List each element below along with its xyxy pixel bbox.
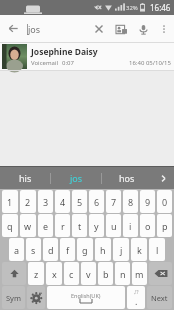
button[interactable]: 3 bbox=[38, 190, 53, 213]
staticText: 7 bbox=[111, 196, 117, 208]
button[interactable]: Backspace bbox=[149, 262, 172, 285]
button[interactable]: 1 bbox=[2, 190, 18, 213]
button[interactable]: j bbox=[113, 238, 129, 261]
staticText: 8 bbox=[128, 196, 134, 208]
button[interactable]: Sym bbox=[2, 286, 25, 309]
button[interactable]: Add contact bbox=[110, 18, 132, 40]
staticText: y bbox=[94, 220, 99, 232]
staticText: 1 bbox=[7, 196, 13, 208]
button[interactable]: n bbox=[115, 262, 130, 285]
staticText: 32% bbox=[126, 4, 138, 12]
staticText: b bbox=[103, 268, 109, 280]
staticText: l bbox=[156, 244, 159, 256]
staticText: 4 bbox=[60, 196, 66, 208]
button[interactable]: r bbox=[55, 214, 70, 237]
button[interactable]: w bbox=[20, 214, 36, 237]
button[interactable]: 9 bbox=[140, 190, 155, 213]
staticText: g bbox=[82, 244, 88, 256]
button[interactable]: b bbox=[98, 262, 113, 285]
staticText: h bbox=[100, 244, 106, 256]
button[interactable]: u bbox=[106, 214, 121, 237]
button[interactable]: 6 bbox=[89, 190, 104, 213]
staticText: w bbox=[24, 220, 32, 232]
button[interactable]: Back bbox=[0, 15, 27, 42]
button[interactable]: s bbox=[26, 238, 41, 261]
staticText: 16:46 bbox=[150, 2, 171, 13]
staticText: k bbox=[137, 244, 142, 256]
button[interactable]: Voice search bbox=[132, 18, 154, 40]
staticText: Voicemail bbox=[31, 59, 58, 67]
staticText: Josephine Daisy bbox=[31, 46, 98, 58]
button[interactable]: h bbox=[95, 238, 111, 261]
staticText: Sym bbox=[6, 293, 21, 303]
button[interactable]: m bbox=[132, 262, 147, 285]
button[interactable]: Josephine Daisy bbox=[0, 43, 174, 70]
button[interactable]: Next bbox=[147, 286, 172, 309]
button[interactable]: a bbox=[9, 238, 24, 261]
button[interactable]: 5 bbox=[72, 190, 87, 213]
button[interactable]: Period bbox=[127, 286, 145, 309]
staticText: o bbox=[145, 220, 151, 232]
staticText: z bbox=[34, 268, 39, 280]
button[interactable]: More suggestions bbox=[152, 167, 174, 189]
button[interactable]: o bbox=[140, 214, 155, 237]
button[interactable]: e bbox=[38, 214, 53, 237]
staticText: i bbox=[129, 220, 132, 232]
button[interactable]: f bbox=[60, 238, 75, 261]
button[interactable]: l bbox=[149, 238, 165, 261]
button[interactable]: x bbox=[46, 262, 62, 285]
staticText: 0:07 bbox=[62, 59, 74, 67]
button[interactable]: jos bbox=[51, 167, 101, 189]
button[interactable]: g bbox=[77, 238, 93, 261]
staticText: 0 bbox=[162, 196, 168, 208]
staticText: a bbox=[14, 244, 20, 256]
button[interactable]: jos bbox=[27, 15, 88, 42]
button[interactable]: Clear bbox=[88, 18, 110, 40]
staticText: d bbox=[48, 244, 54, 256]
button[interactable]: z bbox=[28, 262, 44, 285]
button[interactable]: y bbox=[89, 214, 104, 237]
button[interactable]: 4 bbox=[55, 190, 70, 213]
button[interactable]: d bbox=[43, 238, 58, 261]
button[interactable]: c bbox=[64, 262, 79, 285]
staticText: Next bbox=[151, 293, 168, 303]
staticText: s bbox=[31, 244, 36, 256]
staticText: his bbox=[19, 172, 32, 184]
staticText: p bbox=[162, 220, 168, 232]
staticText: u bbox=[111, 220, 117, 232]
staticText: m bbox=[135, 268, 144, 280]
button[interactable]: t bbox=[72, 214, 87, 237]
staticText: v bbox=[86, 268, 91, 280]
staticText: ,!? bbox=[134, 289, 139, 295]
button[interactable]: Shift bbox=[2, 262, 26, 285]
staticText: jos bbox=[28, 23, 41, 35]
staticText: x bbox=[52, 268, 57, 280]
staticText: q bbox=[7, 220, 13, 232]
staticText: c bbox=[69, 268, 74, 280]
button[interactable]: 2 bbox=[20, 190, 36, 213]
staticText: 3 bbox=[43, 196, 49, 208]
staticText: 9 bbox=[145, 196, 151, 208]
staticText: t bbox=[78, 220, 82, 232]
button[interactable]: k bbox=[131, 238, 147, 261]
button[interactable]: 0 bbox=[157, 190, 172, 213]
staticText: English(UK) bbox=[71, 292, 101, 299]
button[interactable]: hos bbox=[102, 167, 152, 189]
button[interactable]: Space bbox=[47, 286, 125, 309]
button[interactable]: 8 bbox=[123, 190, 138, 213]
staticText: 16:40 05/10/15 bbox=[129, 59, 171, 67]
button[interactable]: q bbox=[2, 214, 18, 237]
button[interactable]: More options bbox=[154, 19, 174, 39]
staticText: n bbox=[120, 268, 126, 280]
button[interactable]: his bbox=[0, 167, 50, 189]
staticText: e bbox=[43, 220, 49, 232]
staticText: 2 bbox=[25, 196, 31, 208]
staticText: 5 bbox=[77, 196, 83, 208]
staticText: jos bbox=[70, 172, 83, 184]
staticText: j bbox=[120, 244, 123, 256]
button[interactable]: v bbox=[81, 262, 96, 285]
button[interactable]: i bbox=[123, 214, 138, 237]
button[interactable]: 7 bbox=[106, 190, 121, 213]
button[interactable]: p bbox=[157, 214, 172, 237]
button[interactable]: Keyboard settings bbox=[27, 286, 45, 309]
